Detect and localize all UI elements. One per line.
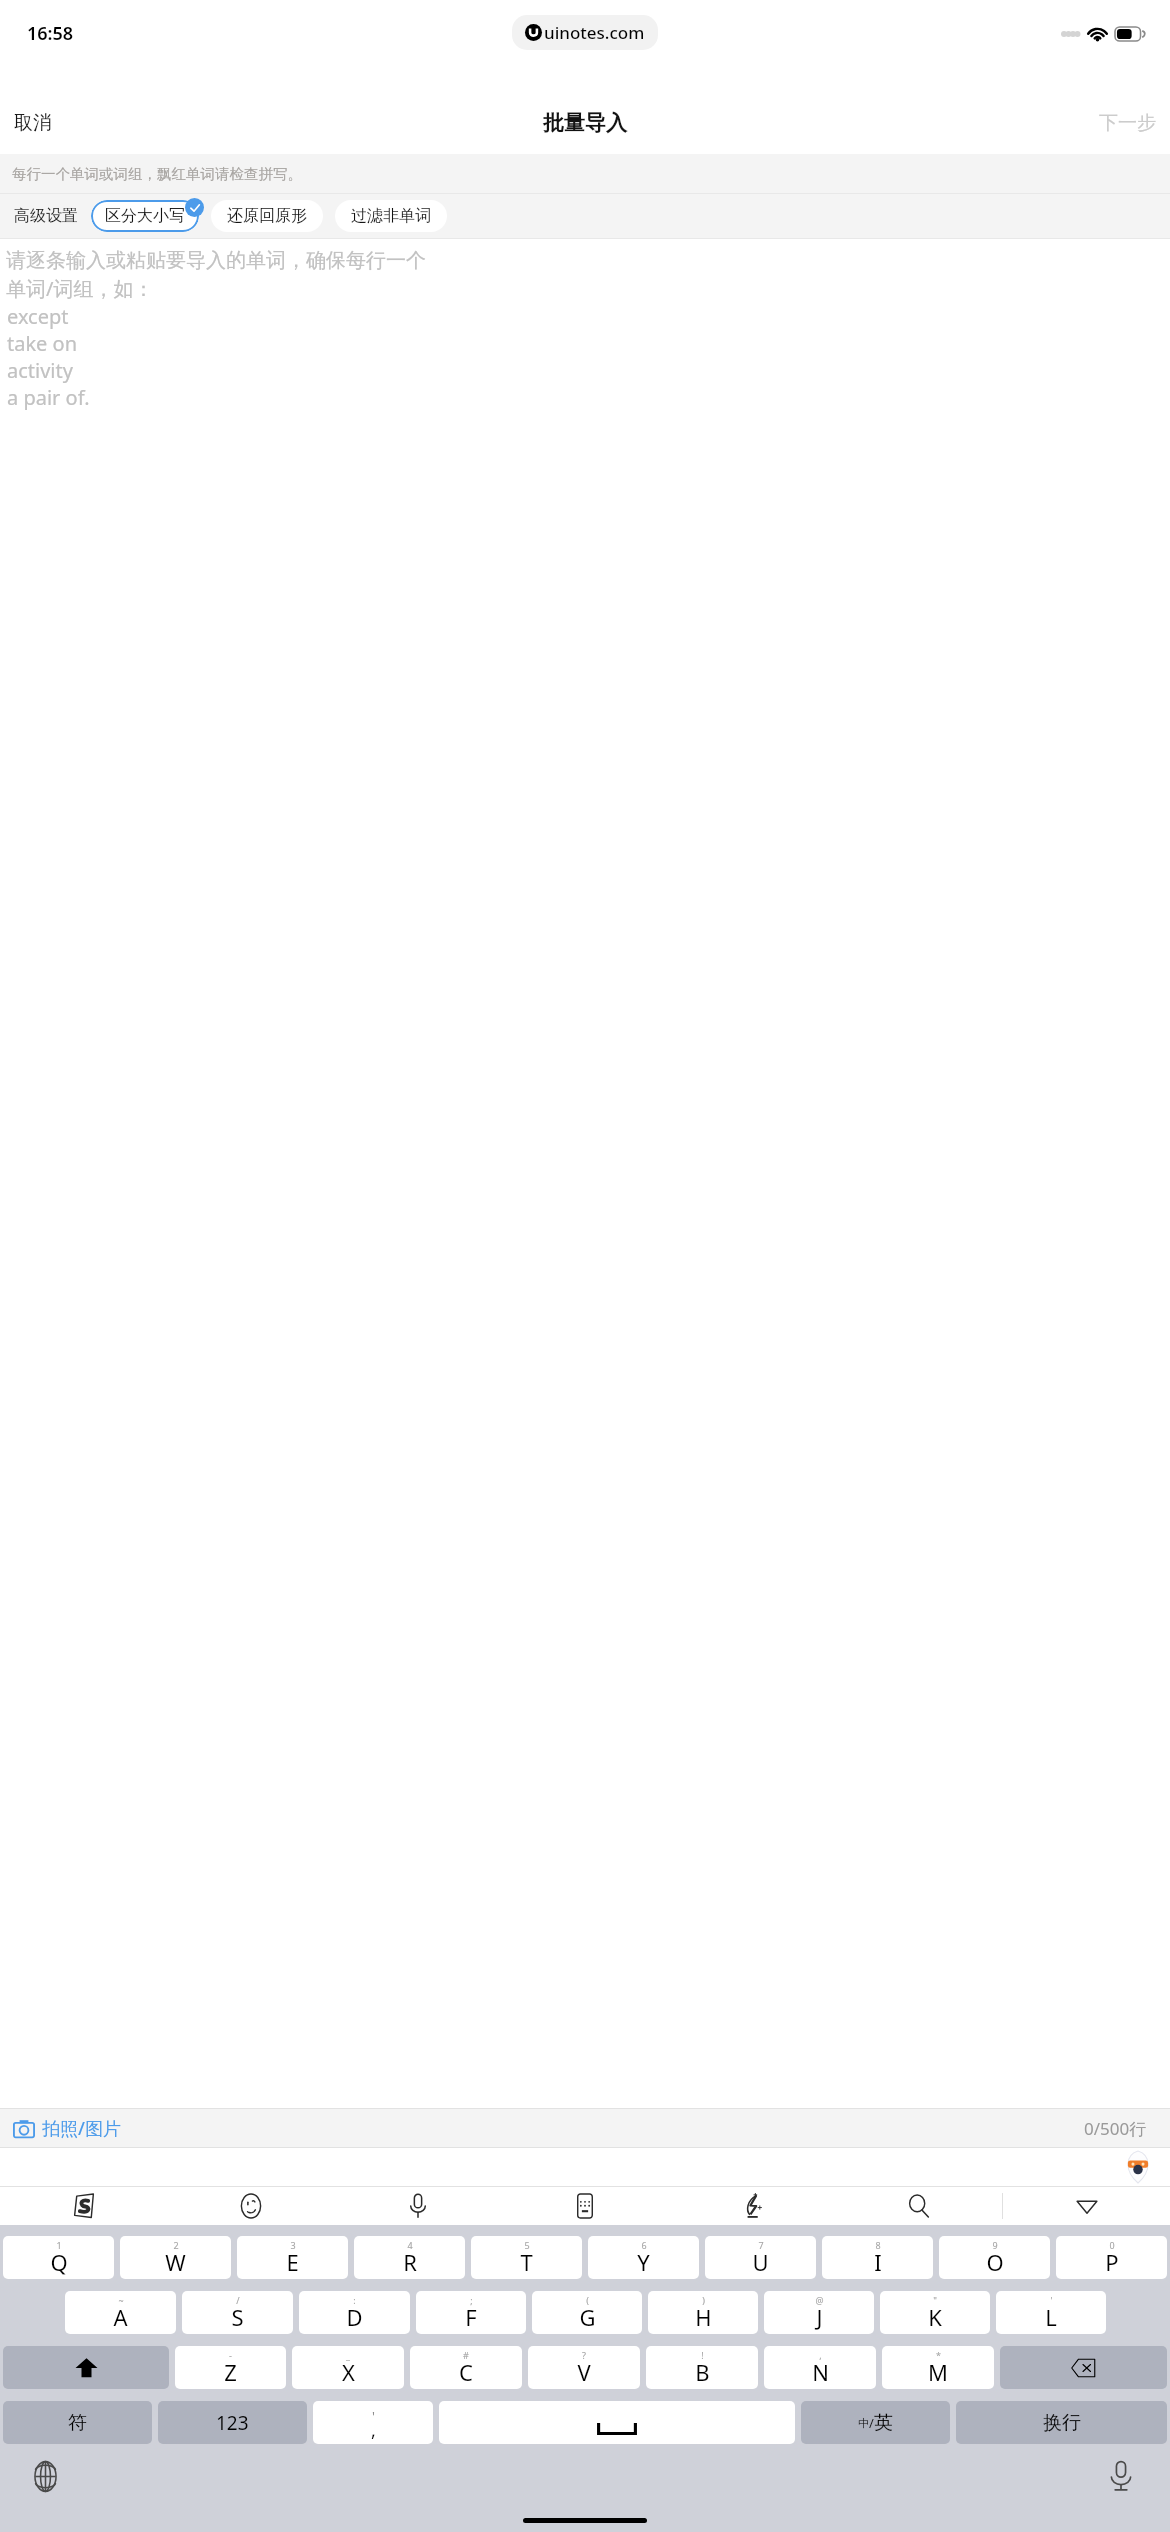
button[interactable]: Search — [835, 2187, 1002, 2225]
staticText: uinotes.com — [544, 21, 645, 44]
staticText: U — [752, 2247, 769, 2277]
button[interactable]: ~ — [65, 2291, 176, 2334]
button[interactable]: ( — [532, 2291, 642, 2334]
button[interactable]: 下一步 — [1085, 103, 1170, 143]
staticText: * — [936, 2349, 941, 2361]
staticText: Q — [50, 2247, 68, 2277]
staticText: 取消 — [14, 111, 52, 135]
staticText: 16:58 — [27, 21, 74, 46]
button[interactable]: 1 — [3, 2236, 114, 2279]
staticText: # — [463, 2349, 469, 2361]
staticText: P — [1105, 2247, 1119, 2277]
staticText: 5 — [524, 2239, 530, 2251]
button[interactable]: 过滤非单词 — [335, 200, 447, 232]
button[interactable]: 4 — [354, 2236, 465, 2279]
button[interactable]: Handwriting — [668, 2187, 835, 2225]
staticText: 4 — [407, 2239, 413, 2251]
staticText: , — [819, 2349, 822, 2361]
button[interactable]: Sogou — [0, 2187, 167, 2225]
button[interactable]: 中 — [801, 2401, 950, 2444]
button[interactable]: 拍照/图片 — [0, 2110, 134, 2147]
button[interactable]: " — [880, 2291, 990, 2334]
button[interactable]: ; — [416, 2291, 526, 2334]
button[interactable]: 3 — [237, 2236, 348, 2279]
button[interactable]: 换行 — [956, 2401, 1167, 2444]
button[interactable]: 高级设置 — [12, 200, 80, 232]
staticText: F — [465, 2302, 477, 2332]
staticText: N — [812, 2357, 829, 2387]
staticText: / — [236, 2294, 240, 2306]
button[interactable]: Voice input — [334, 2187, 501, 2225]
staticText: 高级设置 — [14, 206, 78, 226]
button[interactable]: 6 — [588, 2236, 699, 2279]
button[interactable]: 符 — [3, 2401, 152, 2444]
button[interactable]: Emoji — [167, 2187, 334, 2225]
staticText: A — [113, 2302, 128, 2332]
button[interactable]: , — [764, 2346, 876, 2389]
staticText: ; — [470, 2294, 473, 2306]
staticText: 0/500行 — [1084, 2117, 1147, 2140]
staticText: C — [459, 2357, 473, 2387]
staticText: 批量导入 — [543, 110, 627, 136]
button[interactable]: ) — [648, 2291, 758, 2334]
staticText: 下一步 — [1099, 111, 1156, 135]
staticText: 6 — [641, 2239, 647, 2251]
staticText: S — [231, 2302, 244, 2332]
button[interactable]: Shift — [3, 2346, 169, 2389]
button[interactable]: : — [299, 2291, 410, 2334]
staticText: " — [933, 2294, 937, 2306]
staticText: 3 — [290, 2239, 296, 2251]
staticText: take on — [7, 330, 78, 357]
button[interactable]: - — [175, 2346, 286, 2389]
staticText: J — [816, 2302, 823, 2332]
staticText: ! — [701, 2349, 704, 2361]
button[interactable]: Delete — [1000, 2346, 1167, 2389]
staticText: 拍照/图片 — [42, 2116, 121, 2141]
button[interactable]: 区分大小写 — [91, 200, 199, 232]
button[interactable]: / — [182, 2291, 293, 2334]
button[interactable]: Change keyboard — [28, 2459, 62, 2493]
staticText: 过滤非单词 — [351, 206, 431, 226]
staticText: ~ — [118, 2294, 124, 2306]
staticText: 2 — [173, 2239, 179, 2251]
button[interactable]: Hide keyboard — [1003, 2187, 1170, 2225]
staticText: 7 — [758, 2239, 764, 2251]
button[interactable]: 123 — [158, 2401, 307, 2444]
staticText: 英 — [874, 2411, 893, 2435]
button[interactable]: Dictation — [1104, 2459, 1138, 2493]
button[interactable]: ! — [646, 2346, 758, 2389]
button[interactable]: 2 — [120, 2236, 231, 2279]
button[interactable]: * — [882, 2346, 994, 2389]
staticText: R — [403, 2247, 417, 2277]
staticText: ( — [586, 2294, 589, 2306]
staticText: 0 — [1109, 2239, 1115, 2251]
button[interactable]: ' — [996, 2291, 1106, 2334]
staticText: X — [342, 2357, 355, 2387]
staticText: 换行 — [1043, 2411, 1081, 2435]
staticText: K — [928, 2302, 942, 2332]
staticText: - — [229, 2349, 232, 2361]
button[interactable]: 5 — [471, 2236, 582, 2279]
staticText: 区分大小写 — [105, 206, 185, 226]
staticText: ) — [702, 2294, 705, 2306]
button[interactable]: _ — [292, 2346, 404, 2389]
button[interactable]: ' — [313, 2401, 433, 2444]
staticText: @ — [815, 2294, 824, 2306]
button[interactable]: @ — [764, 2291, 874, 2334]
staticText: 符 — [68, 2411, 87, 2435]
button[interactable]: Space — [439, 2401, 795, 2444]
staticText: 请逐条输入或粘贴要导入的单词，确保每行一个 单词/词组，如： — [6, 248, 426, 302]
staticText: 还原回原形 — [227, 206, 307, 226]
button[interactable]: 0 — [1056, 2236, 1167, 2279]
staticText: ' — [1050, 2294, 1053, 2306]
button[interactable]: 还原回原形 — [211, 200, 323, 232]
button[interactable]: ? — [528, 2346, 640, 2389]
button[interactable]: 取消 — [0, 103, 66, 143]
button[interactable]: Keypad — [501, 2187, 668, 2225]
button[interactable]: 7 — [705, 2236, 816, 2279]
staticText: B — [695, 2357, 710, 2387]
button[interactable]: 8 — [822, 2236, 933, 2279]
button[interactable]: # — [410, 2346, 522, 2389]
staticText: T — [520, 2247, 533, 2277]
button[interactable]: 9 — [939, 2236, 1050, 2279]
